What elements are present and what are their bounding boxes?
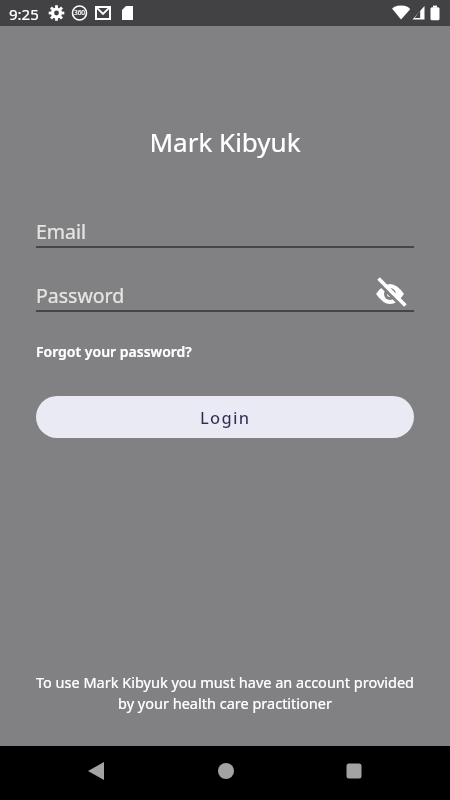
staticText: To use Mark Kibyuk you must have an acco…: [0, 672, 450, 714]
button[interactable]: [374, 278, 406, 310]
button[interactable]: [80, 755, 112, 787]
staticText: Login: [200, 406, 251, 428]
staticText: Password: [36, 282, 125, 309]
button[interactable]: [338, 755, 370, 787]
button[interactable]: Forgot your password?: [30, 336, 198, 367]
button[interactable]: [210, 755, 242, 787]
staticText: Mark Kibyuk: [0, 124, 450, 159]
button[interactable]: Login: [36, 396, 414, 438]
staticText: 360: [71, 8, 88, 17]
staticText: Email: [36, 218, 87, 245]
staticText: Forgot your password?: [36, 342, 192, 361]
staticText: 9:25: [9, 4, 39, 24]
